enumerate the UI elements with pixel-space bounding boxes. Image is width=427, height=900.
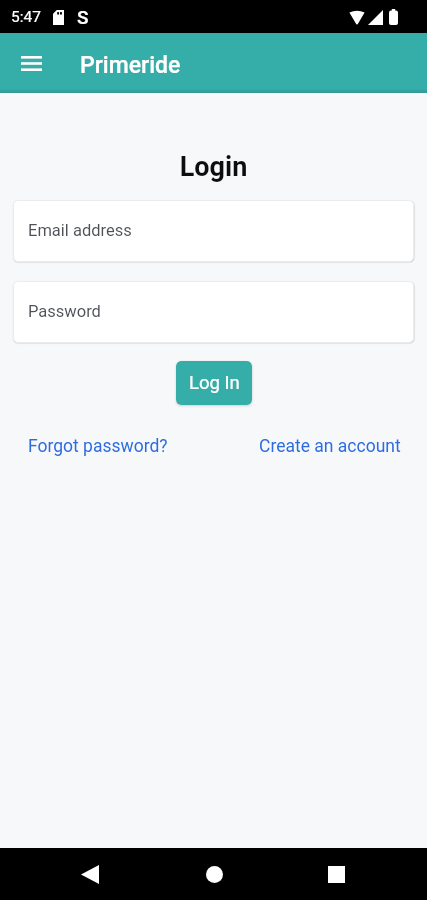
- staticText: Log In: [189, 372, 240, 394]
- staticText: S: [77, 6, 89, 28]
- staticText: 5:47: [11, 8, 41, 26]
- button[interactable]: Create an account: [246, 430, 414, 463]
- staticText: Password: [28, 302, 101, 321]
- button[interactable]: Home: [186, 848, 242, 900]
- staticText: Forgot password?: [28, 436, 168, 457]
- button[interactable]: Password: [13, 281, 414, 343]
- button[interactable]: Back: [62, 848, 118, 900]
- staticText: Login: [0, 151, 427, 183]
- staticText: Email address: [28, 221, 132, 240]
- button[interactable]: Open navigation menu: [10, 42, 52, 84]
- button[interactable]: Recent apps: [308, 848, 364, 900]
- button[interactable]: Forgot password?: [15, 430, 181, 463]
- button[interactable]: Email address: [13, 200, 414, 262]
- button[interactable]: Log In: [176, 361, 252, 405]
- staticText: Create an account: [259, 436, 401, 457]
- staticText: Primeride: [80, 52, 181, 79]
